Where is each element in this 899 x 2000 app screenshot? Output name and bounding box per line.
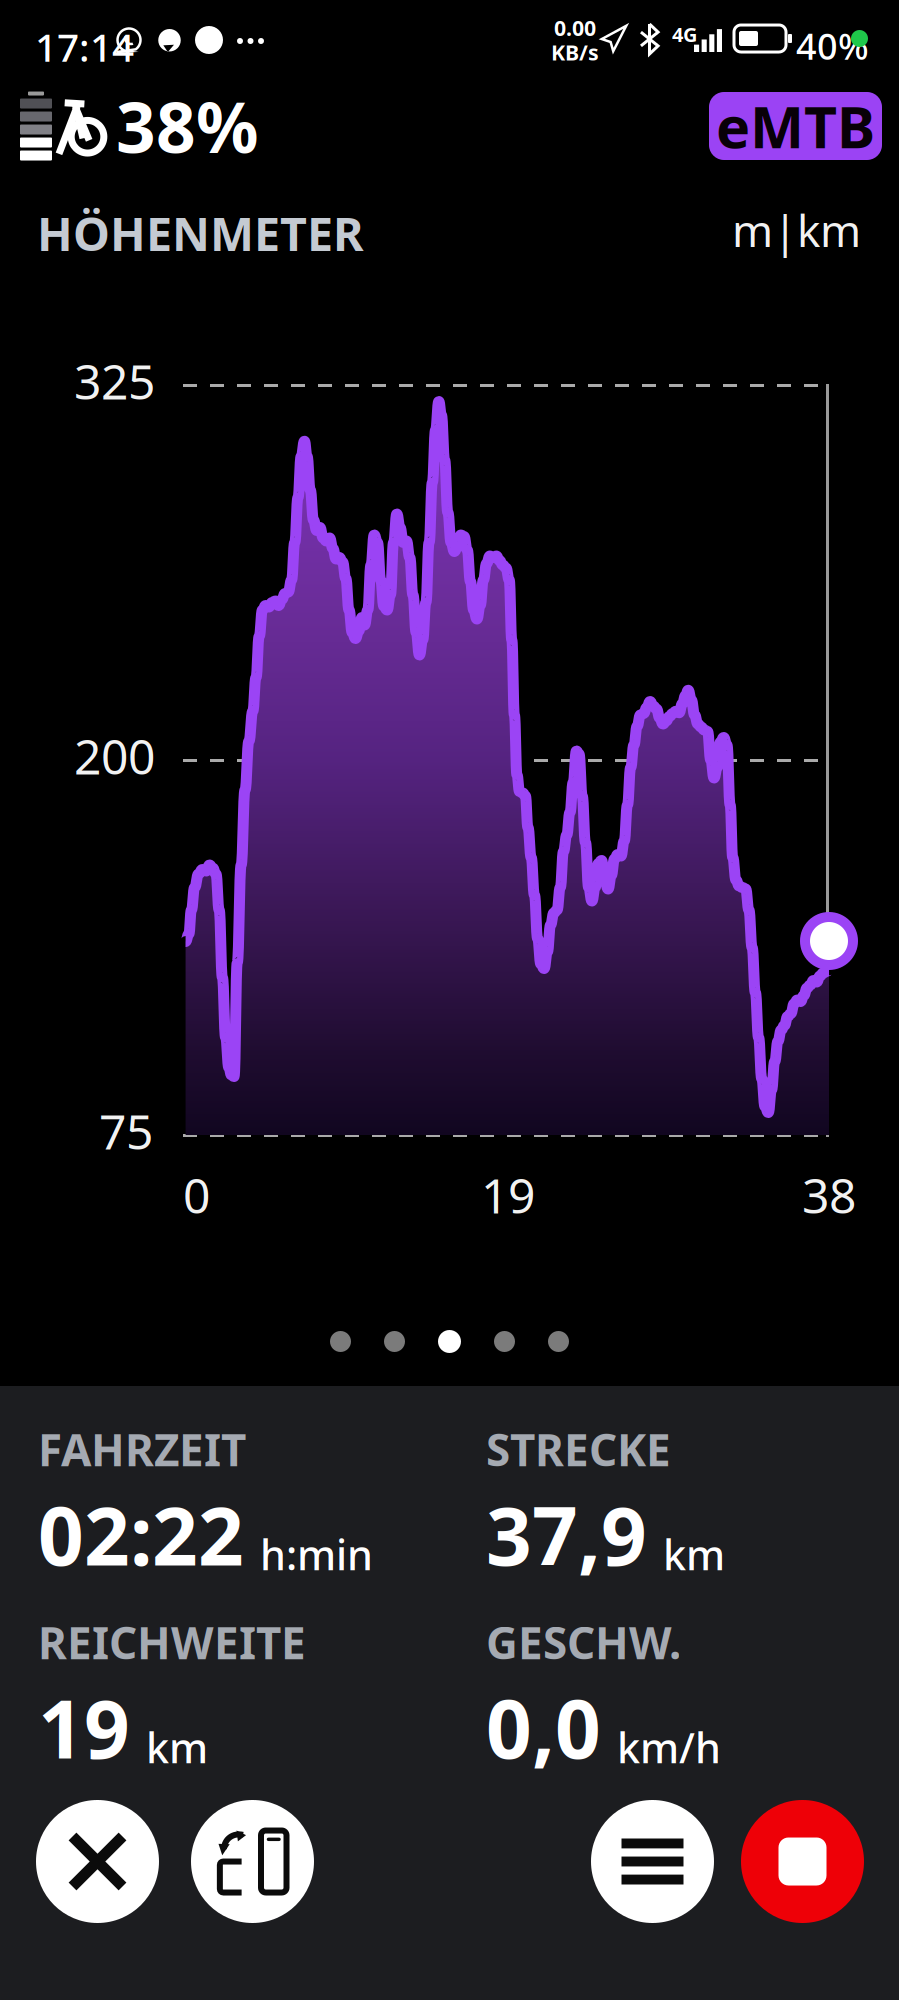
staticText: 200	[74, 724, 155, 788]
staticText: m|km	[732, 201, 861, 259]
staticText: 4G	[672, 21, 697, 48]
button[interactable]: Stop ride	[741, 1800, 864, 1923]
staticText: eMTB	[716, 88, 875, 164]
staticText: 19	[481, 1163, 535, 1227]
staticText: FAHRZEIT	[38, 1420, 246, 1478]
staticText: 75	[99, 1099, 153, 1163]
staticText: GESCHW.	[486, 1613, 681, 1671]
staticText: HÖHENMETER	[37, 202, 364, 264]
button[interactable]: Rotate display	[191, 1800, 314, 1923]
staticText: KB/s	[551, 38, 599, 66]
staticText: km	[146, 1720, 208, 1775]
staticText: 38	[802, 1163, 856, 1227]
staticText: 0.00	[554, 14, 596, 42]
staticText: REICHWEITE	[38, 1613, 306, 1671]
staticText: STRECKE	[486, 1420, 671, 1478]
staticText: 37,9	[486, 1481, 647, 1588]
staticText: 19	[38, 1674, 130, 1781]
staticText: 17:14	[35, 21, 134, 72]
button[interactable]: Menu	[591, 1800, 714, 1923]
button[interactable]: eMTB	[709, 92, 882, 160]
staticText: 40%	[796, 22, 869, 70]
staticText: 02:22	[38, 1481, 244, 1588]
staticText: 0,0	[486, 1674, 601, 1781]
staticText: h:min	[260, 1527, 373, 1582]
staticText: 0	[183, 1163, 210, 1227]
staticText: km	[663, 1527, 725, 1582]
staticText: km/h	[617, 1720, 721, 1775]
button[interactable]: Close	[36, 1800, 159, 1923]
staticText: 325	[74, 349, 155, 413]
staticText: 38%	[116, 80, 259, 172]
